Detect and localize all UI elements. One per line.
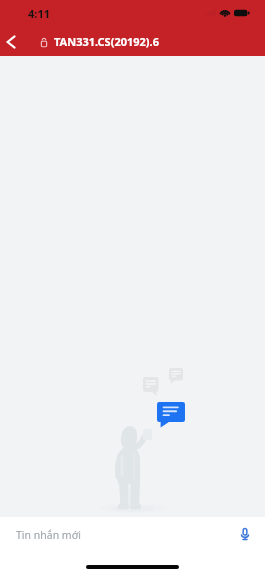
staticText: TAN331.CS(20192).6 bbox=[54, 34, 159, 49]
button[interactable]: Voice input bbox=[233, 522, 257, 546]
staticText: Tin nhắn mới bbox=[16, 528, 81, 542]
button[interactable]: Back bbox=[0, 27, 22, 57]
staticText: 4:11 bbox=[28, 6, 50, 21]
